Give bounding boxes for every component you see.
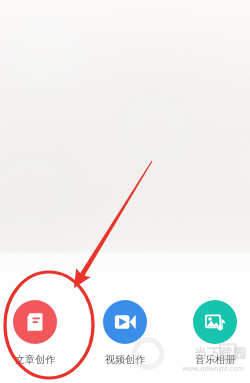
staticText: 音乐相册	[195, 353, 235, 366]
button[interactable]: 视频创作	[96, 300, 154, 366]
staticText: www.downxia.com	[182, 364, 244, 374]
button[interactable]: 音乐相册	[186, 300, 244, 366]
staticText: 视频创作	[105, 353, 145, 366]
staticText: 当下载园	[194, 345, 246, 361]
button[interactable]: 文章创作	[6, 300, 64, 366]
staticText: 文章创作	[15, 353, 55, 366]
